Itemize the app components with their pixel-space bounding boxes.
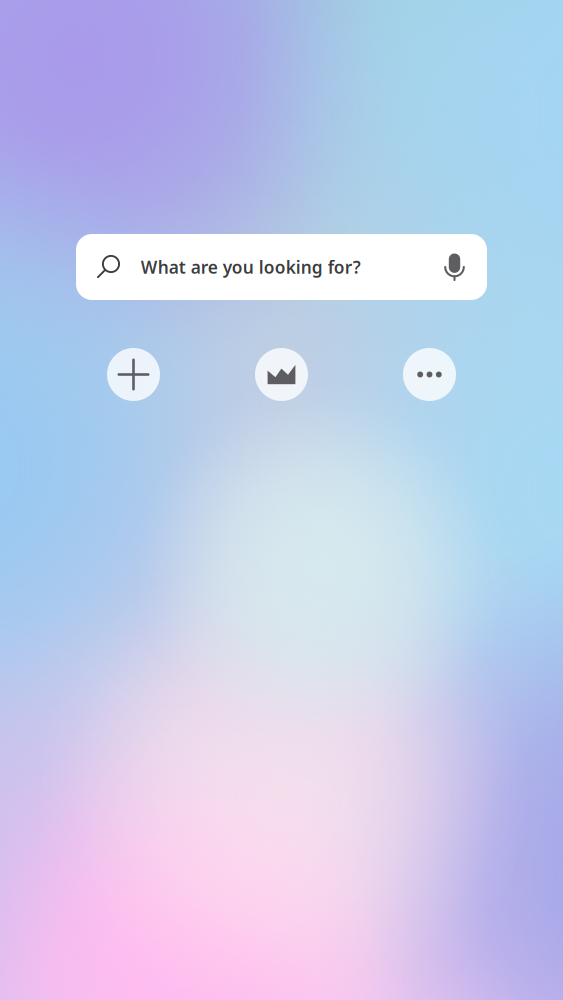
staticText: What are you looking for? [141, 255, 361, 278]
button[interactable]: More [403, 348, 456, 401]
button[interactable]: What are you looking for? [76, 234, 487, 300]
button[interactable]: Add [107, 348, 160, 401]
button[interactable]: Highlights [255, 348, 308, 401]
